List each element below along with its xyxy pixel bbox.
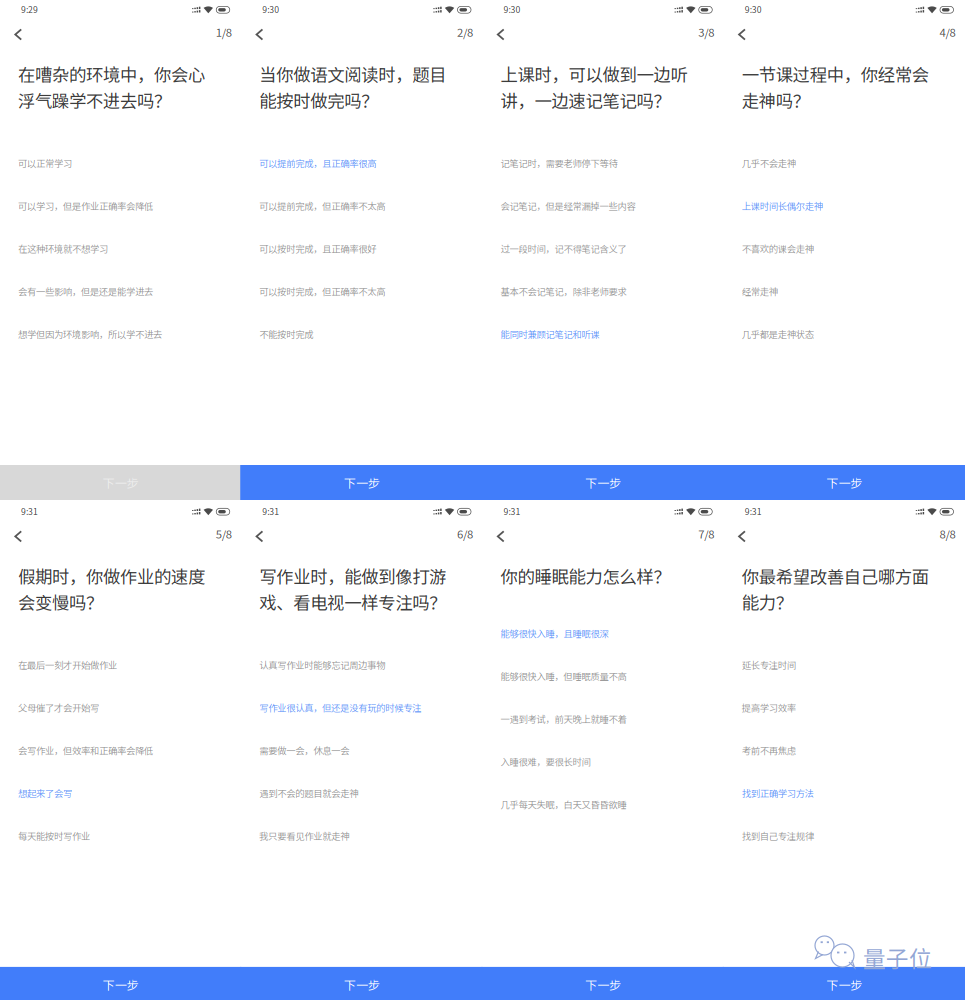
staticText: 能够很快入睡，且睡眠很深 [500,626,608,640]
staticText: 9:30 [745,3,762,15]
button[interactable]: 入睡很难，要很长时间 [482,740,724,783]
button[interactable]: 过一段时间，记不得笔记含义了 [482,227,724,270]
staticText: 延长专注时间 [742,658,796,671]
button[interactable]: Back [0,524,40,548]
button[interactable]: 可以提前完成，且正确率很高 [241,141,482,184]
button[interactable]: 想起来了会写 [0,772,241,814]
staticText: 过一段时间，记不得笔记含义了 [500,242,626,255]
button[interactable]: 能够很快入睡，且睡眠很深 [482,612,724,655]
staticText: 9:31 [262,505,279,517]
button[interactable]: 可以提前完成，但正确率不太高 [241,184,482,227]
staticText: 每天能按时写作业 [18,829,90,842]
staticText: 量子位 [863,941,932,974]
staticText: 需要做一会，休息一会 [259,743,349,757]
staticText: 可以按时完成，但正确率不太高 [259,284,385,298]
button[interactable]: 经常走神 [724,270,965,313]
button[interactable]: 会有一些影响，但是还是能学进去 [0,270,241,313]
button[interactable]: 记笔记时，需要老师停下等待 [482,141,724,184]
button[interactable]: 考前不再焦虑 [724,729,965,772]
button[interactable]: 想学但因为环境影响，所以学不进去 [0,312,241,355]
staticText: 一节课过程中，你经常会走神吗？ [742,61,929,113]
button[interactable]: Back [241,524,281,548]
button[interactable]: 下一步 [481,465,725,500]
staticText: 可以按时完成，且正确率很好 [259,242,376,255]
staticText: 8/8 [939,525,955,542]
staticText: 下一步 [103,976,139,993]
button[interactable]: 遇到不会的题目就会走神 [241,772,482,814]
button[interactable]: 下一步 [0,465,242,500]
button[interactable]: 需要做一会，休息一会 [241,729,482,772]
staticText: 可以正常学习 [18,156,72,170]
staticText: 会写作业，但效率和正确率会降低 [18,743,153,757]
button[interactable]: 一遇到考试，前天晚上就睡不着 [482,697,724,740]
staticText: 9:30 [503,3,520,15]
button[interactable]: 下一步 [481,967,725,1000]
button[interactable]: Back [482,22,523,46]
staticText: 可以提前完成，且正确率很高 [259,156,376,170]
button[interactable]: 提高学习效率 [724,686,965,729]
button[interactable]: 在最后一刻才开始做作业 [0,643,241,686]
staticText: 上课时间长偶尔走神 [742,199,823,212]
staticText: 4/8 [939,23,955,40]
button[interactable]: Back [241,22,281,46]
button[interactable]: 下一步 [240,967,483,1000]
button[interactable]: 下一步 [0,967,242,1000]
staticText: 考前不再焦虑 [742,743,796,757]
button[interactable]: 父母催了才会开始写 [0,686,241,729]
button[interactable]: Back [724,524,764,548]
staticText: 9:29 [21,3,38,15]
button[interactable]: 我只要看见作业就走神 [241,814,482,857]
button[interactable]: 可以学习，但是作业正确率会降低 [0,184,241,227]
button[interactable]: 每天能按时写作业 [0,814,241,857]
staticText: 下一步 [826,976,862,993]
staticText: 上课时，可以做到一边听讲，一边速记笔记吗？ [500,61,687,113]
staticText: 提高学习效率 [742,701,796,714]
staticText: 可以提前完成，但正确率不太高 [259,199,385,212]
staticText: 下一步 [585,474,621,491]
staticText: 父母催了才会开始写 [18,701,99,714]
button[interactable]: 可以正常学习 [0,141,241,184]
button[interactable]: 会写作业，但效率和正确率会降低 [0,729,241,772]
button[interactable]: 在这种环境就不想学习 [0,227,241,270]
button[interactable]: 找到正确学习方法 [724,772,965,814]
staticText: 下一步 [344,474,380,491]
button[interactable]: Back [724,22,764,46]
button[interactable]: 可以按时完成，但正确率不太高 [241,270,482,313]
button[interactable]: 会记笔记，但是经常漏掉一些内容 [482,184,724,227]
button[interactable]: 可以按时完成，且正确率很好 [241,227,482,270]
staticText: 下一步 [103,474,139,491]
staticText: 记笔记时，需要老师停下等待 [500,156,617,170]
staticText: 5/8 [216,525,232,542]
button[interactable]: 下一步 [240,465,483,500]
button[interactable]: 基本不会记笔记，除非老师要求 [482,270,724,313]
button[interactable]: Back [482,524,523,548]
staticText: 你最希望改善自己哪方面能力？ [742,563,929,615]
button[interactable]: 认真写作业时能够忘记周边事物 [241,643,482,686]
button[interactable]: 下一步 [723,465,965,500]
staticText: 当你做语文阅读时，题目能按时做完吗？ [259,61,446,113]
button[interactable]: 上课时间长偶尔走神 [724,184,965,227]
button[interactable]: 不能按时完成 [241,312,482,355]
staticText: 会记笔记，但是经常漏掉一些内容 [500,199,635,212]
staticText: 找到正确学习方法 [742,786,814,800]
staticText: 写作业时，能做到像打游戏、看电视一样专注吗？ [259,563,446,615]
staticText: 几乎每天失眠，白天又昏昏欲睡 [500,797,626,811]
staticText: 几乎不会走神 [742,156,796,170]
button[interactable]: 下一步 [723,967,965,1000]
button[interactable]: 延长专注时间 [724,643,965,686]
button[interactable]: 几乎不会走神 [724,141,965,184]
staticText: 9:31 [503,505,520,517]
staticText: 在最后一刻才开始做作业 [18,658,117,671]
button[interactable]: 不喜欢的课会走神 [724,227,965,270]
staticText: 经常走神 [742,284,778,298]
button[interactable]: 几乎都是走神状态 [724,312,965,355]
button[interactable]: 几乎每天失眠，白天又昏昏欲睡 [482,783,724,826]
button[interactable]: 找到自己专注规律 [724,814,965,857]
staticText: 下一步 [826,474,862,491]
button[interactable]: 能同时兼顾记笔记和听课 [482,312,724,355]
button[interactable]: Back [0,22,40,46]
staticText: 下一步 [344,976,380,993]
button[interactable]: 能够很快入睡，但睡眠质量不高 [482,655,724,697]
button[interactable]: 写作业很认真，但还是没有玩的时候专注 [241,686,482,729]
staticText: 我只要看见作业就走神 [259,829,349,842]
